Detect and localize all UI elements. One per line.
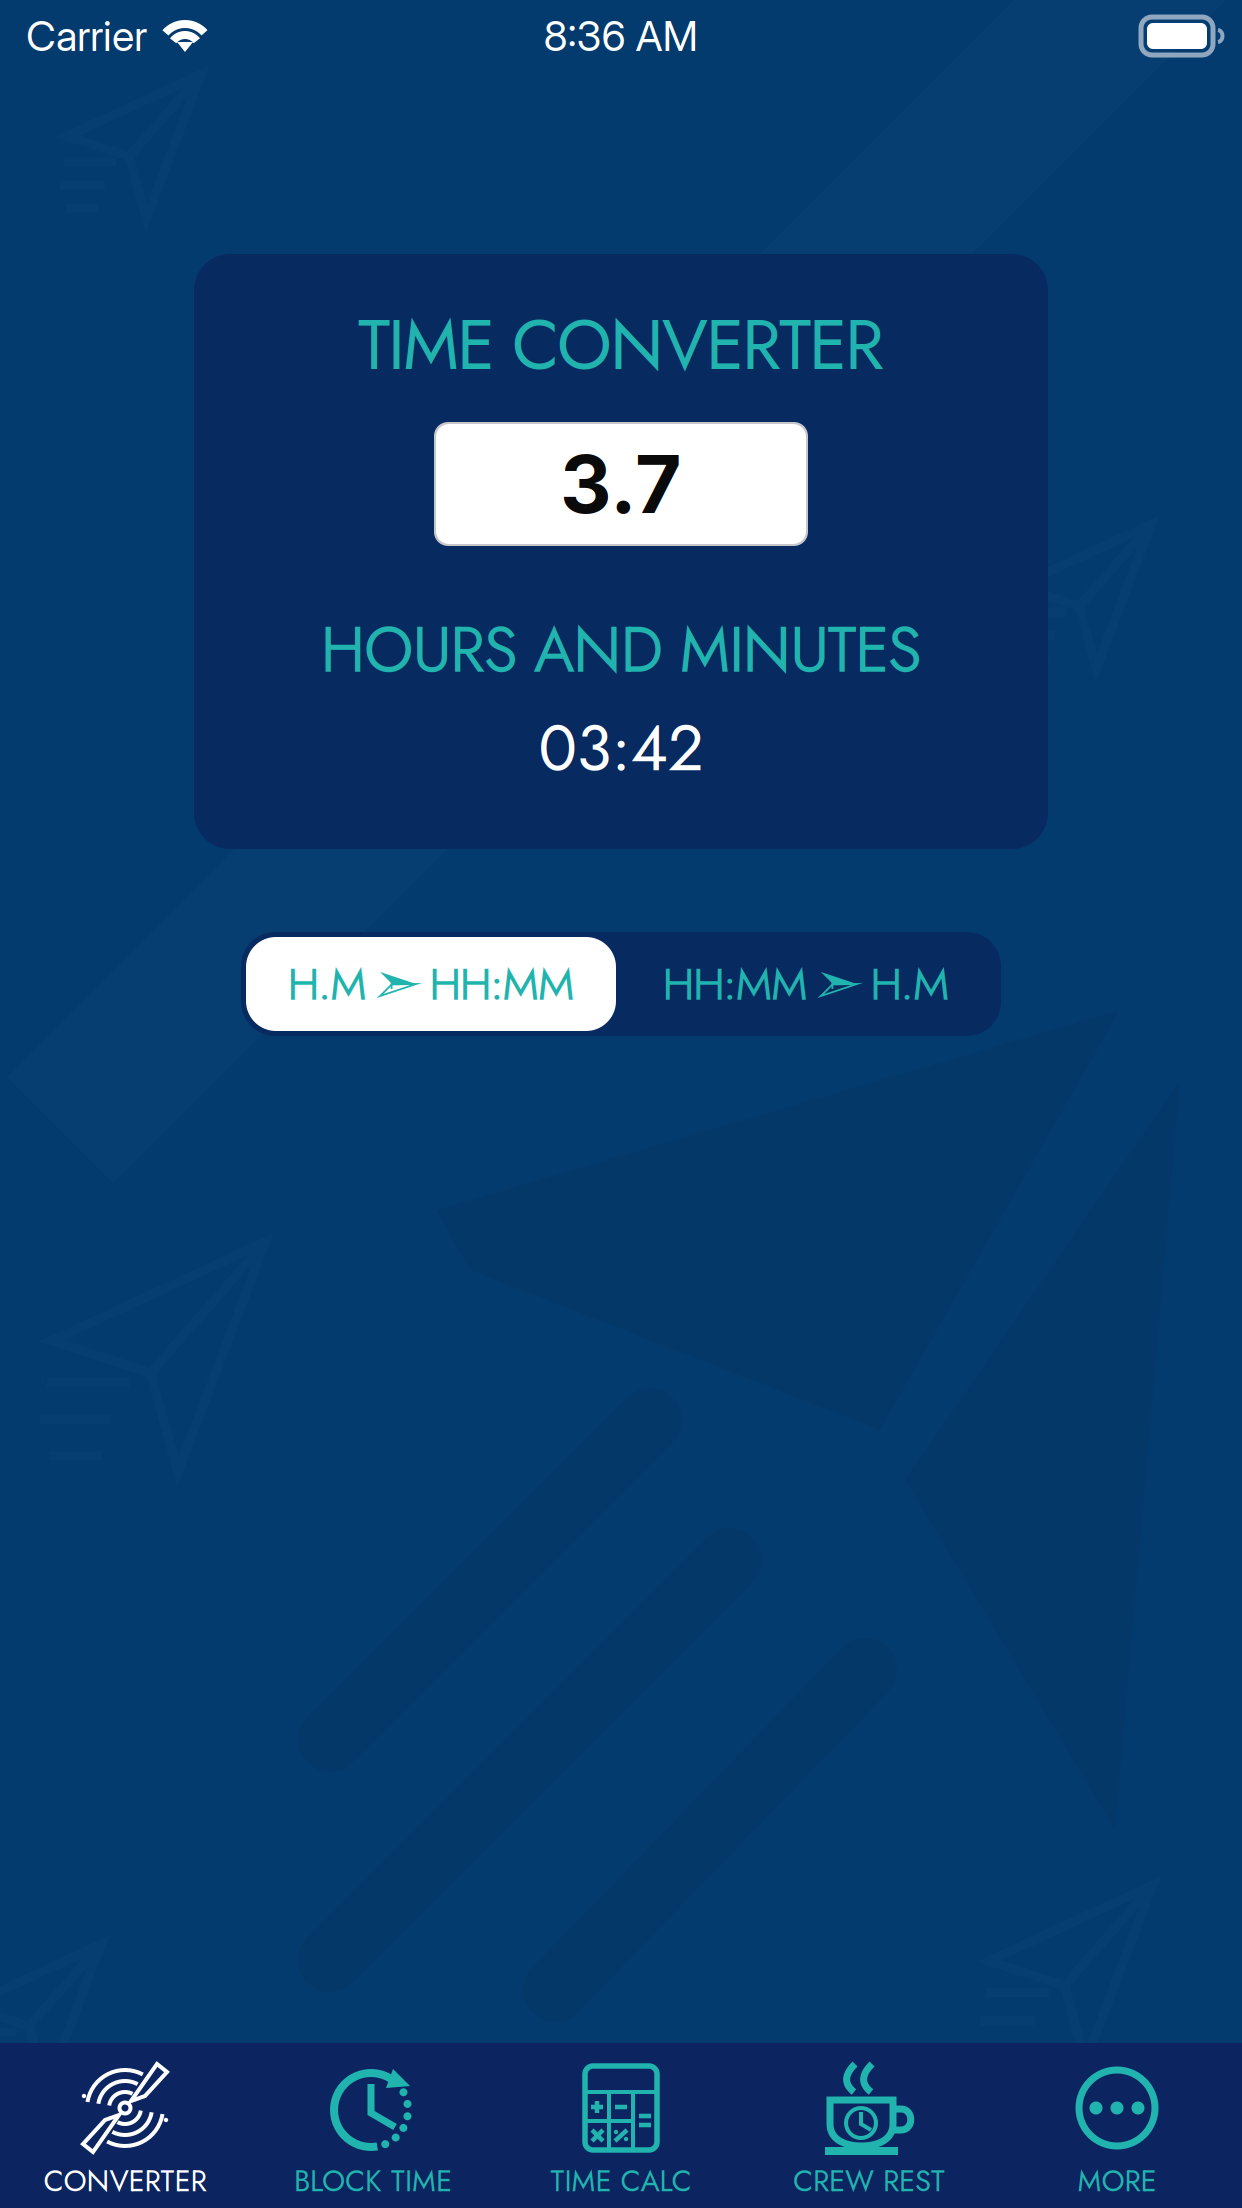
staticText: HH:MM — [429, 951, 575, 1017]
staticText: TIME CONVERTER — [358, 295, 884, 395]
button[interactable]: MORE — [993, 2043, 1241, 2208]
staticText: CONVERTER — [43, 2160, 206, 2202]
staticText: Carrier — [26, 11, 147, 61]
staticText: CREW REST — [793, 2160, 945, 2202]
staticText: HH:MM — [662, 951, 808, 1017]
staticText: MORE — [1077, 2160, 1156, 2202]
staticText: HOURS AND MINUTES — [320, 605, 921, 695]
staticText: 8:36 AM — [543, 11, 698, 61]
button[interactable]: CONVERTER — [1, 2043, 249, 2208]
staticText: 03:42 — [538, 702, 703, 794]
staticText: 3.7 — [560, 436, 682, 532]
staticText: H.M — [870, 951, 950, 1017]
button[interactable]: H.M — [246, 937, 616, 1031]
staticText: BLOCK TIME — [294, 2160, 452, 2202]
button[interactable]: HH:MM — [616, 937, 996, 1031]
button[interactable]: BLOCK TIME — [249, 2043, 497, 2208]
staticText: TIME CALC — [550, 2160, 691, 2202]
button[interactable]: CREW REST — [745, 2043, 993, 2208]
staticText: H.M — [287, 951, 367, 1017]
button[interactable]: TIME CALC — [497, 2043, 745, 2208]
